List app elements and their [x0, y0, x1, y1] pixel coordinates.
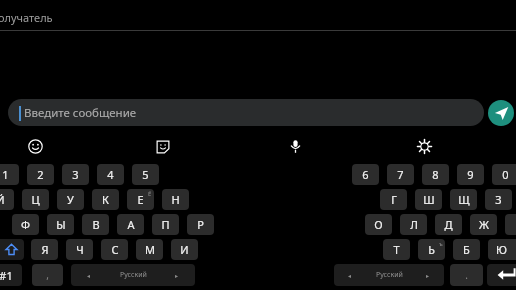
staticText: ▸: [426, 272, 430, 279]
button[interactable]: Ю: [488, 239, 515, 260]
staticText: 7: [397, 167, 404, 182]
button[interactable]: 1: [0, 164, 19, 185]
button[interactable]: !#1: [0, 264, 22, 286]
button[interactable]: Е: [127, 189, 154, 210]
staticText: 5: [142, 167, 149, 182]
staticText: Ё: [148, 190, 152, 198]
button[interactable]: Sticker: [149, 133, 176, 160]
button[interactable]: У: [57, 189, 84, 210]
button[interactable]: Ь: [418, 239, 445, 260]
button[interactable]: 6: [352, 164, 379, 185]
staticText: И: [180, 242, 189, 257]
staticText: 3: [72, 167, 79, 182]
button[interactable]: А: [117, 214, 144, 235]
staticText: Л: [410, 217, 418, 232]
button[interactable]: Г: [380, 189, 407, 210]
button[interactable]: О: [365, 214, 392, 235]
button[interactable]: .: [450, 264, 483, 286]
staticText: Ч: [76, 242, 84, 257]
staticText: А: [127, 217, 135, 232]
staticText: Н: [171, 192, 180, 207]
staticText: Русский: [376, 270, 403, 280]
button[interactable]: В: [82, 214, 109, 235]
button[interactable]: 2: [27, 164, 54, 185]
button[interactable]: Ч: [66, 239, 93, 260]
button[interactable]: Д: [435, 214, 462, 235]
button[interactable]: 5: [132, 164, 159, 185]
staticText: Й: [0, 192, 5, 207]
button[interactable]: Т: [383, 239, 410, 260]
staticText: 2: [37, 167, 44, 182]
staticText: Щ: [458, 192, 470, 207]
button[interactable]: И: [171, 239, 198, 260]
staticText: !#1: [0, 268, 13, 283]
button[interactable]: Л: [400, 214, 427, 235]
staticText: Ж: [479, 217, 489, 232]
button[interactable]: Ф: [12, 214, 39, 235]
staticText: 8: [432, 167, 439, 182]
staticText: ◂: [348, 272, 352, 279]
button[interactable]: Э: [505, 214, 516, 235]
staticText: .: [465, 268, 468, 282]
staticText: Ц: [31, 192, 40, 207]
staticText: Ш: [423, 192, 435, 207]
button[interactable]: Emoji: [22, 133, 49, 160]
button[interactable]: Щ: [450, 189, 477, 210]
staticText: Я: [41, 242, 49, 257]
staticText: ,: [46, 268, 49, 282]
button[interactable]: ,: [32, 264, 63, 286]
staticText: ▸: [175, 272, 179, 279]
button[interactable]: С: [101, 239, 128, 260]
staticText: 0: [502, 167, 509, 182]
button[interactable]: Н: [162, 189, 189, 210]
button[interactable]: М: [136, 239, 163, 260]
staticText: 1: [2, 167, 9, 182]
button[interactable]: Voice input: [282, 133, 309, 160]
staticText: Т: [393, 242, 400, 257]
staticText: Ю: [496, 242, 507, 257]
button[interactable]: Ы: [47, 214, 74, 235]
button[interactable]: К: [92, 189, 119, 210]
button[interactable]: Я: [31, 239, 58, 260]
staticText: ◂: [87, 272, 91, 279]
staticText: Д: [444, 217, 453, 232]
button[interactable]: 4: [97, 164, 124, 185]
button[interactable]: олучатель: [0, 0, 516, 30]
button[interactable]: Backspace: [487, 264, 516, 286]
staticText: Ы: [56, 217, 66, 232]
staticText: Ь: [428, 242, 435, 257]
button[interactable]: З: [485, 189, 512, 210]
button[interactable]: 9: [457, 164, 484, 185]
button[interactable]: Ж: [470, 214, 497, 235]
button[interactable]: 8: [422, 164, 449, 185]
staticText: С: [111, 242, 119, 257]
button[interactable]: Send: [488, 100, 514, 126]
button[interactable]: Русский: [334, 264, 444, 286]
button[interactable]: Р: [187, 214, 214, 235]
staticText: К: [102, 192, 109, 207]
button[interactable]: 0: [492, 164, 516, 185]
staticText: У: [67, 192, 74, 207]
staticText: Р: [197, 217, 204, 232]
staticText: З: [495, 192, 502, 207]
staticText: Б: [463, 242, 470, 257]
button[interactable]: Русский: [71, 264, 195, 286]
button[interactable]: П: [152, 214, 179, 235]
button[interactable]: Б: [453, 239, 480, 260]
button[interactable]: Введите сообщение: [8, 99, 484, 126]
button[interactable]: [0, 239, 24, 260]
button[interactable]: Ш: [415, 189, 442, 210]
staticText: Введите сообщение: [24, 105, 137, 121]
staticText: 9: [467, 167, 474, 182]
button[interactable]: Settings: [411, 133, 438, 160]
staticText: О: [374, 217, 383, 232]
button[interactable]: Й: [0, 189, 14, 210]
staticText: В: [92, 217, 100, 232]
button[interactable]: Ц: [22, 189, 49, 210]
button[interactable]: 7: [387, 164, 414, 185]
staticText: ъ: [439, 240, 443, 248]
staticText: Ф: [21, 217, 30, 232]
button[interactable]: 3: [62, 164, 89, 185]
